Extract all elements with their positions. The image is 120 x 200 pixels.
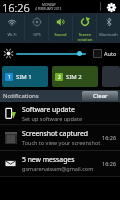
staticText: Wi-Fi: [7, 32, 17, 37]
button[interactable]: Bluetooth: [97, 13, 120, 43]
staticText: Set up software update: [22, 115, 83, 122]
button[interactable]: 1: [2, 66, 48, 87]
staticText: Sound: [54, 32, 67, 37]
button[interactable]: Wi-Fi: [0, 13, 24, 43]
button[interactable]: 2: [52, 66, 98, 87]
staticText: Touch to view your screenshot: [22, 139, 101, 146]
staticText: Bluetooth: [99, 32, 118, 37]
staticText: 2: [58, 74, 61, 81]
staticText: Screenshot captured: [22, 129, 88, 138]
button[interactable]: More options: [102, 66, 120, 87]
button[interactable]: Brightness: [16, 43, 90, 64]
staticText: GPS: [33, 32, 41, 37]
staticText: 5 new messages: [22, 155, 75, 164]
staticText: 16:26: [102, 160, 117, 167]
staticText: 4 FEBRUARY 2013: [35, 7, 62, 11]
staticText: Screen rotation: [77, 32, 93, 42]
staticText: SIM 1: [16, 73, 32, 81]
button[interactable]: GPS: [25, 13, 48, 43]
button[interactable]: 5 new messages: [0, 151, 120, 177]
staticText: MONDAY: [42, 3, 56, 7]
button[interactable]: Screen rotation: [73, 13, 96, 43]
staticText: 16:26: [102, 134, 117, 141]
button[interactable]: Clear: [82, 91, 118, 101]
staticText: 1: [8, 74, 11, 81]
staticText: 16:26: [2, 0, 30, 13]
button[interactable]: Software update: [0, 102, 120, 125]
staticText: SIM 2: [66, 73, 82, 81]
staticText: Auto: [104, 50, 117, 57]
staticText: Clear: [93, 92, 108, 100]
staticText: Software update: [22, 105, 75, 114]
staticText: gsmarenateam@gmail.com: [22, 165, 94, 172]
button[interactable]: Screenshot captured: [0, 125, 120, 151]
button[interactable]: Sound: [49, 13, 72, 43]
button[interactable]: Settings: [105, 1, 117, 13]
staticText: Notifications: [3, 92, 39, 100]
